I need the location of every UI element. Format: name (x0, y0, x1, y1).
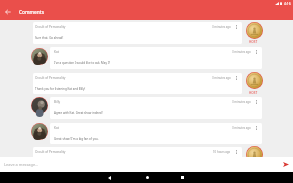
button[interactable]: Profile photo (246, 22, 263, 39)
button[interactable]: 3 minutes ago (33, 73, 242, 94)
button[interactable]: 3 minutes ago (50, 97, 262, 119)
button[interactable]: More options (231, 147, 242, 157)
button[interactable]: More options (231, 73, 242, 83)
button[interactable]: 3 minutes ago (50, 47, 262, 69)
button[interactable]: Back (0, 4, 16, 20)
staticText: 3 minutes ago (232, 50, 251, 54)
staticText: Agree with Kat. Great show indeed! (54, 111, 103, 115)
button[interactable]: More options (251, 97, 262, 107)
button[interactable]: 10 hours ago (33, 147, 242, 169)
button[interactable]: 3 minutes ago (33, 22, 242, 44)
staticText: 4:16 (284, 1, 291, 6)
button[interactable]: Profile photo (31, 48, 48, 65)
button[interactable]: Profile photo (246, 146, 263, 163)
staticText: HOST (249, 40, 258, 44)
staticText: Occult of Personality (35, 76, 66, 80)
staticText: HOST (249, 91, 258, 95)
button[interactable]: More options (251, 47, 262, 57)
button[interactable]: More options (231, 22, 242, 32)
staticText: 3 minutes ago (232, 126, 251, 130)
button[interactable]: Send (281, 159, 291, 169)
button[interactable]: Back (100, 172, 118, 183)
button[interactable]: More options (251, 123, 262, 133)
staticText: I've a question I would like to ask. May… (54, 61, 110, 65)
staticText: 3 minutes ago (212, 25, 231, 29)
staticText: Billy (54, 100, 61, 104)
staticText: 3 minutes ago (212, 76, 231, 80)
staticText: Comments (19, 9, 44, 16)
staticText: Sure that. Go ahead! (35, 36, 64, 40)
staticText: Occult of Personality (35, 150, 66, 154)
staticText: Occult of Personality (35, 25, 66, 29)
staticText: 3 minutes ago (232, 100, 251, 104)
button[interactable]: Profile photo (31, 97, 48, 114)
button[interactable]: Profile photo (31, 123, 48, 140)
staticText: Kat (54, 126, 59, 130)
staticText: Kat (54, 50, 59, 54)
button[interactable]: 3 minutes ago (50, 123, 262, 144)
staticText: Thank you for listening Kat and Billy! (35, 87, 86, 91)
staticText: Leave a message... (4, 162, 39, 167)
button[interactable]: Home (138, 172, 156, 183)
button[interactable]: Recent apps (173, 172, 191, 183)
button[interactable]: Profile photo (246, 72, 263, 89)
staticText: Great show! I'm a big fan of you. (54, 137, 99, 141)
staticText: 10 hours ago (213, 150, 231, 154)
